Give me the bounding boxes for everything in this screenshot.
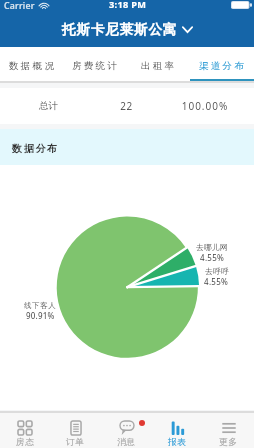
staticText: 数据分布 <box>12 142 59 155</box>
staticText: 更多 <box>219 437 238 448</box>
button[interactable]: 数据概况 <box>0 47 63 81</box>
button[interactable]: 更多 <box>203 413 254 448</box>
staticText: 渠道分布 <box>199 60 247 72</box>
button[interactable]: 房费统计 <box>63 47 126 81</box>
button[interactable]: 房态 <box>0 413 50 448</box>
staticText: 房态 <box>16 437 35 448</box>
staticText: 数据概况 <box>9 60 57 72</box>
staticText: 消息 <box>117 437 136 448</box>
staticText: 3:18 PM <box>109 0 147 10</box>
staticText: 4.55% <box>204 276 229 287</box>
staticText: 22 <box>97 99 156 113</box>
staticText: 100.00% <box>156 99 254 113</box>
button[interactable]: 渠道分布 <box>190 47 254 81</box>
staticText: 房费统计 <box>72 60 120 72</box>
staticText: 线下客人 <box>24 301 57 310</box>
button[interactable]: 出租率 <box>126 47 190 81</box>
button[interactable]: 托斯卡尼莱斯公寓 <box>59 18 196 41</box>
staticText: 90.91% <box>26 310 55 321</box>
button[interactable]: 消息 <box>101 413 152 448</box>
staticText: 去呼呼 <box>205 266 229 276</box>
staticText: 总计 <box>0 100 97 112</box>
button[interactable]: 订单 <box>50 413 101 448</box>
staticText: 报表 <box>168 437 187 448</box>
staticText: 去哪儿网 <box>196 242 228 252</box>
button[interactable]: 报表 <box>152 413 203 448</box>
staticText: 出租率 <box>141 60 177 72</box>
staticText: 托斯卡尼莱斯公寓 <box>62 21 178 38</box>
staticText: Carrier <box>4 0 35 12</box>
staticText: 订单 <box>66 437 85 448</box>
staticText: 4.55% <box>200 252 225 263</box>
